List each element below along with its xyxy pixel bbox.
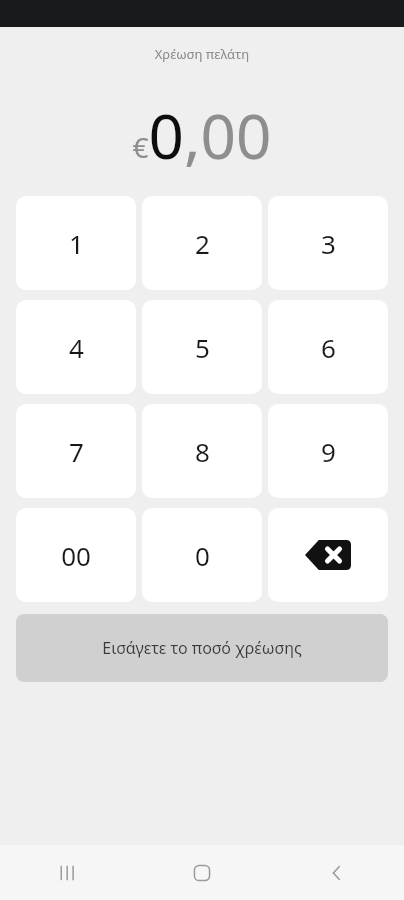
staticText: 4 bbox=[69, 330, 84, 365]
button[interactable]: 7 bbox=[16, 404, 136, 498]
staticText: 0 bbox=[195, 538, 210, 573]
button[interactable]: 0 bbox=[142, 508, 262, 602]
staticText: 9 bbox=[321, 434, 336, 469]
button[interactable]: 9 bbox=[268, 404, 388, 498]
button[interactable]: Backspace bbox=[268, 508, 388, 602]
button[interactable]: 8 bbox=[142, 404, 262, 498]
staticText: 3 bbox=[321, 226, 336, 261]
button[interactable]: 2 bbox=[142, 196, 262, 290]
staticText: 6 bbox=[321, 330, 336, 365]
staticText: 5 bbox=[195, 330, 210, 365]
button[interactable]: 4 bbox=[16, 300, 136, 394]
staticText: Εισάγετε το ποσό χρέωσης bbox=[102, 637, 302, 659]
button[interactable]: 00 bbox=[16, 508, 136, 602]
staticText: 7 bbox=[69, 434, 84, 469]
staticText: 1 bbox=[69, 226, 84, 261]
button[interactable]: 6 bbox=[268, 300, 388, 394]
staticText: 00 bbox=[61, 538, 91, 573]
button[interactable]: Home bbox=[134, 845, 269, 900]
staticText: 2 bbox=[195, 226, 210, 261]
button[interactable]: Back bbox=[269, 845, 404, 900]
button[interactable]: 3 bbox=[268, 196, 388, 290]
button[interactable]: 5 bbox=[142, 300, 262, 394]
staticText: Χρέωση πελάτη bbox=[0, 45, 404, 63]
button[interactable]: Εισάγετε το ποσό χρέωσης bbox=[16, 614, 388, 682]
staticText: 8 bbox=[195, 434, 210, 469]
button[interactable]: Recents bbox=[0, 845, 134, 900]
button[interactable]: 1 bbox=[16, 196, 136, 290]
staticText: €0,00 bbox=[132, 93, 272, 173]
